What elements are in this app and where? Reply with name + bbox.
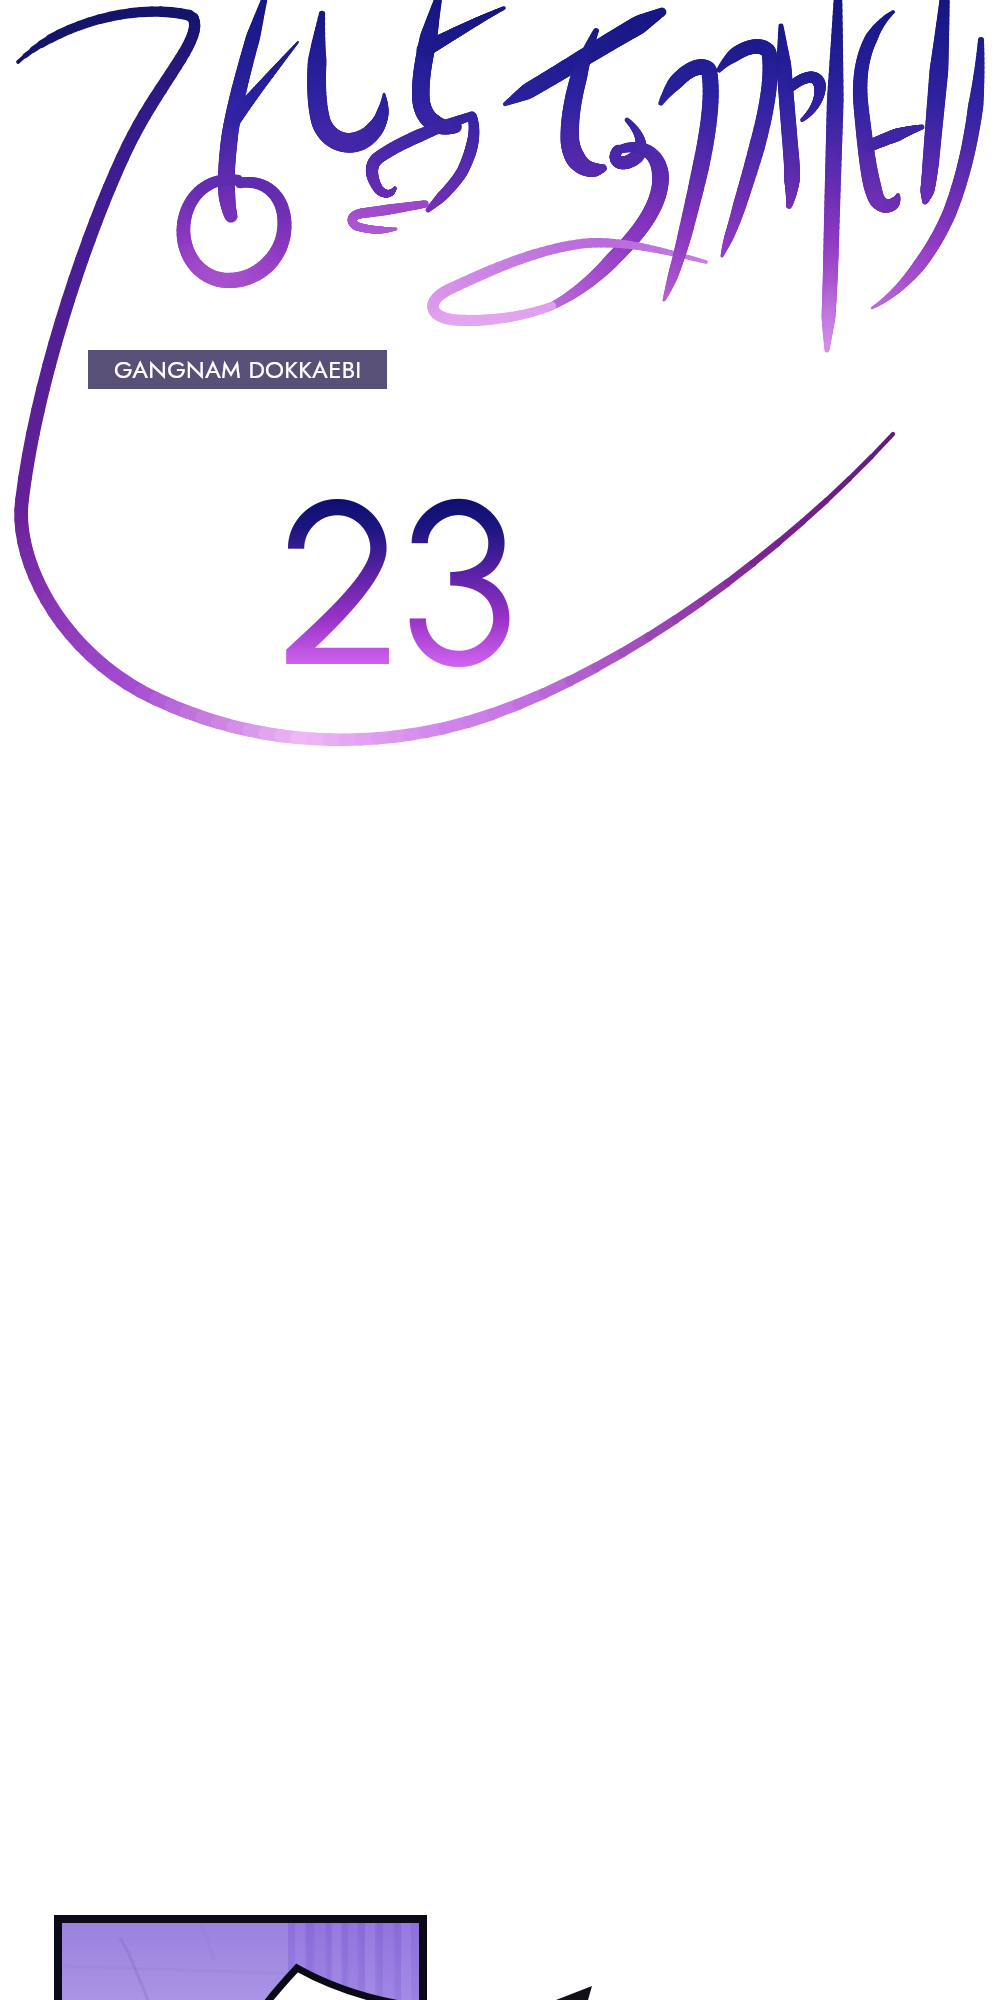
- button[interactable]: GANGNAM DOKKAEBI: [88, 350, 387, 389]
- staticText: GANGNAM DOKKAEBI: [114, 352, 362, 387]
- button[interactable]: 23: [277, 445, 517, 722]
- staticText: 23: [277, 445, 517, 722]
